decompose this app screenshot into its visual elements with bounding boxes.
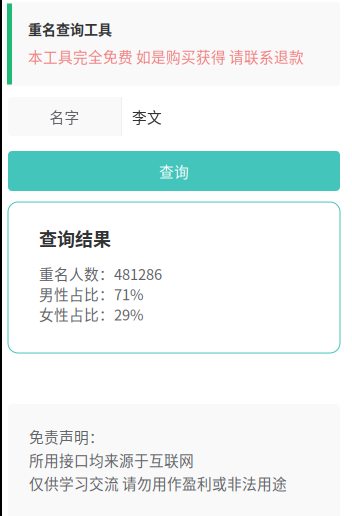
staticText: 查询 [159,160,189,182]
staticText: 本工具完全免费 如是购买获得 请联系退款 [28,46,304,67]
staticText: 所用接口均来源于互联网 [29,449,194,470]
staticText: 查询结果 [39,225,111,251]
staticText: 重名人数：481286 [39,263,162,284]
button[interactable]: 查询 [8,151,340,191]
staticText: 名字 [49,106,79,127]
staticText: 男性占比：71% [39,283,144,304]
staticText: 重名查询工具 [28,18,112,39]
staticText: 女性占比：29% [39,303,144,325]
staticText: 仅供学习交流 请勿用作盈利或非法用途 [29,472,287,494]
staticText: 李文 [132,106,162,127]
staticText: 免责声明： [29,426,104,447]
button[interactable]: 名字 [8,97,340,136]
